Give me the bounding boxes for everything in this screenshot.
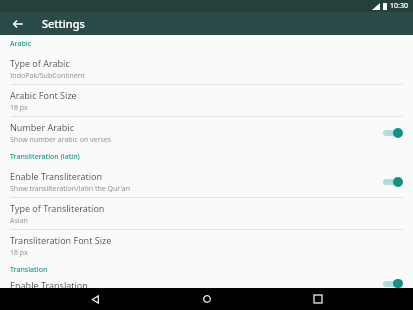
staticText: 18 px	[10, 103, 28, 113]
button[interactable]: Home	[190, 288, 224, 310]
staticText: 10:30	[390, 1, 408, 11]
staticText: Translation	[10, 265, 48, 275]
staticText: Show transliteration/latin the Qur'an	[10, 184, 131, 194]
staticText: Transliteration (latin)	[10, 152, 80, 162]
staticText: Type of Transliteration	[10, 202, 105, 214]
staticText: Settings	[42, 16, 85, 31]
button[interactable]: Number Arabic	[0, 117, 413, 148]
button[interactable]: Back	[78, 288, 112, 310]
staticText: Enable Transliteration	[10, 170, 103, 182]
button[interactable]: Recent apps	[301, 288, 335, 310]
staticText: Number Arabic	[10, 121, 74, 133]
button[interactable]: Arabic Font Size	[0, 85, 413, 116]
button[interactable]: Toggle	[381, 279, 403, 288]
staticText: Transliteration Font Size	[10, 234, 112, 246]
staticText: IndoPak/SubContinent	[10, 71, 85, 81]
staticText: Asian	[10, 216, 28, 226]
staticText: Enable Translation	[10, 279, 88, 288]
staticText: 18 px	[10, 248, 28, 258]
button[interactable]: Back	[8, 14, 28, 34]
button[interactable]: Transliteration Font Size	[0, 230, 413, 261]
button[interactable]: Type of Transliteration	[0, 198, 413, 229]
button[interactable]: Type of Arabic	[0, 53, 413, 84]
staticText: Arabic	[10, 39, 32, 49]
staticText: Show number arabic on verses	[10, 135, 112, 145]
staticText: Arabic Font Size	[10, 89, 77, 101]
button[interactable]: Enable Translation	[0, 279, 413, 288]
button[interactable]: Toggle	[381, 126, 403, 140]
staticText: Type of Arabic	[10, 57, 70, 69]
button[interactable]: Toggle	[381, 175, 403, 189]
button[interactable]: Enable Transliteration	[0, 166, 413, 197]
